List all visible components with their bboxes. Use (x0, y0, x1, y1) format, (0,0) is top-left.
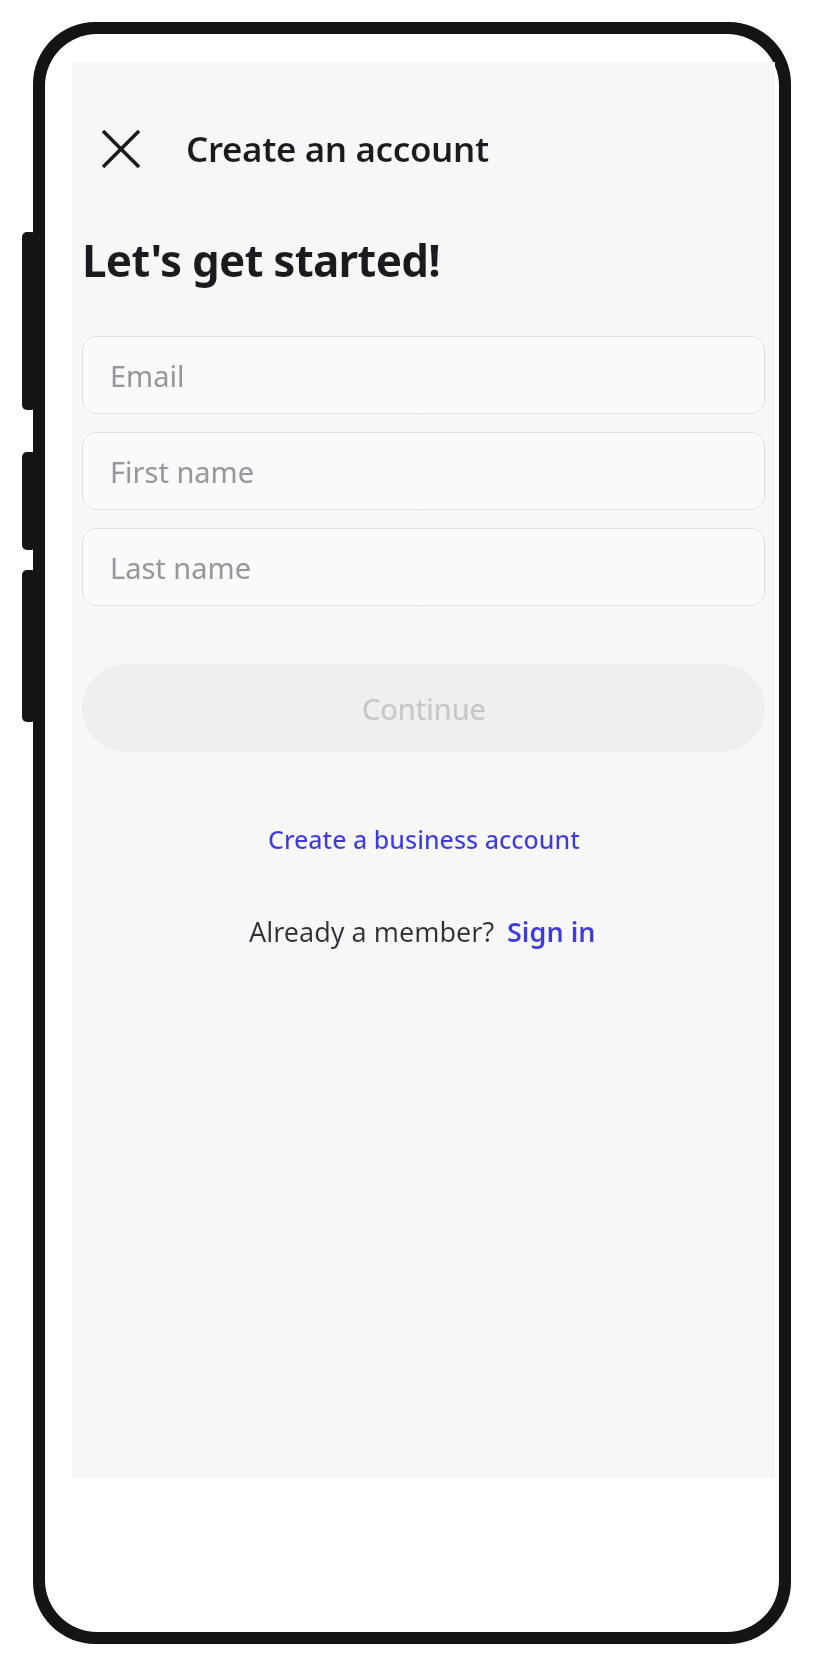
staticText: Create a business account (268, 822, 580, 856)
button[interactable]: Create a business account (254, 814, 594, 864)
button[interactable]: Sign in (504, 908, 599, 955)
button[interactable]: First name (82, 432, 765, 510)
button[interactable]: Continue (82, 664, 765, 752)
button[interactable]: Close (78, 106, 164, 192)
staticText: Sign in (507, 913, 596, 950)
staticText: Continue (362, 689, 486, 728)
staticText: First name (110, 452, 255, 491)
button[interactable]: Last name (82, 528, 765, 606)
staticText: Email (110, 356, 185, 395)
staticText: Create an account (186, 125, 489, 173)
staticText: Let's get started! (82, 230, 440, 290)
staticText: Already a member? (249, 913, 495, 950)
button[interactable]: Email (82, 336, 765, 414)
staticText: Last name (110, 548, 252, 587)
